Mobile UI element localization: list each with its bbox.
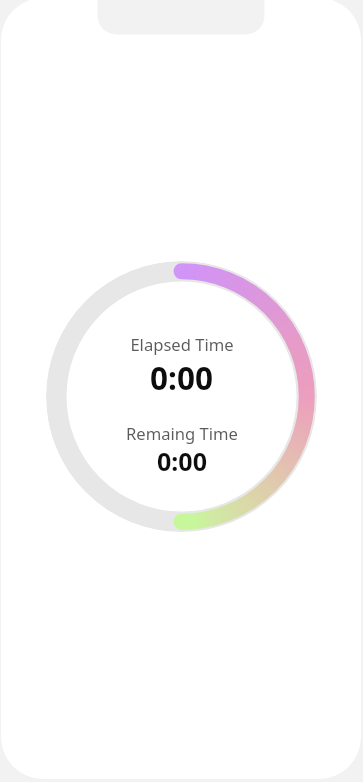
button[interactable]: Start or pause timer [46,261,317,532]
staticText: Elapsed Time [130,333,234,356]
staticText: 0:00 [157,444,207,478]
staticText: Remaing Time [126,422,238,445]
staticText: 0:00 [150,356,213,399]
